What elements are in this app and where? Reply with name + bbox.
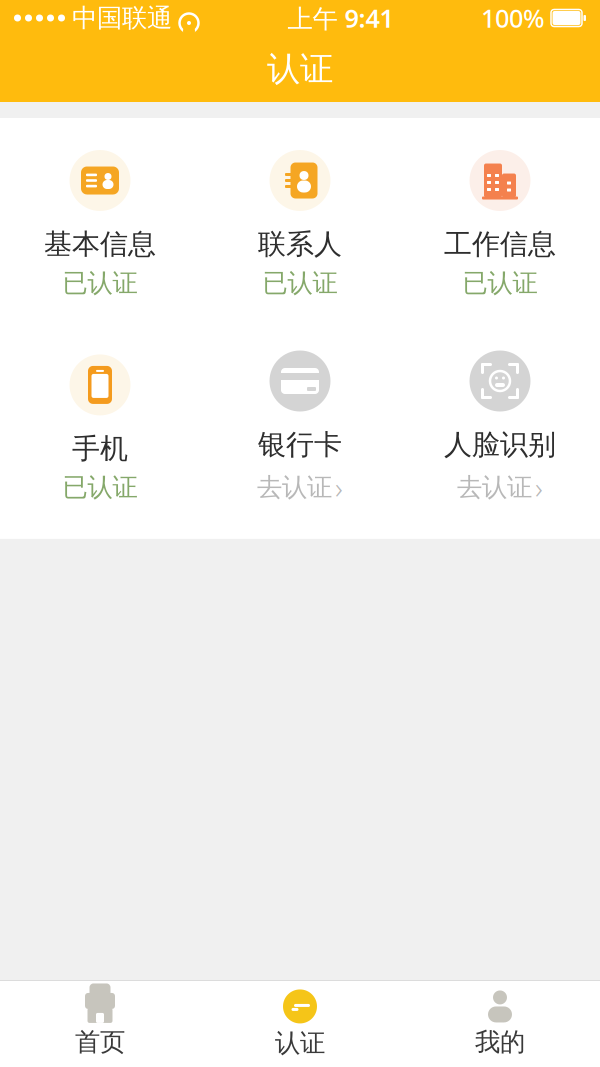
button[interactable]: 工作信息 <box>400 146 600 302</box>
staticText: 去认证 <box>257 472 332 503</box>
staticText: › <box>335 468 343 507</box>
staticText: 已认证 <box>462 267 537 298</box>
staticText: 工作信息 <box>444 227 556 261</box>
button[interactable]: 手机 <box>0 350 200 507</box>
staticText: 上午 9:41 <box>287 1 393 35</box>
staticText: 认证 <box>275 1027 325 1058</box>
button[interactable]: 人脸识别 <box>400 346 600 511</box>
button[interactable]: 认证 <box>0 36 600 102</box>
staticText: 中国联通 <box>72 2 172 33</box>
button[interactable]: 首页 <box>0 984 200 1063</box>
staticText: 我的 <box>475 1026 525 1057</box>
staticText: 去认证 <box>457 472 532 503</box>
button[interactable]: 联系人 <box>200 146 400 302</box>
button[interactable]: 银行卡 <box>200 346 400 511</box>
staticText: 已认证 <box>62 267 137 298</box>
staticText: 首页 <box>75 1026 125 1057</box>
staticText: 基本信息 <box>44 227 156 261</box>
button[interactable]: 我的 <box>400 984 600 1063</box>
staticText: 人脸识别 <box>444 427 556 462</box>
button[interactable]: 基本信息 <box>0 146 200 302</box>
staticText: 联系人 <box>258 227 342 261</box>
staticText: › <box>535 468 543 507</box>
staticText: 已认证 <box>262 267 337 298</box>
button[interactable]: 认证 <box>200 983 400 1064</box>
staticText: 已认证 <box>62 472 137 503</box>
staticText: 100% <box>481 1 545 35</box>
staticText: 认证 <box>267 48 333 89</box>
staticText: 银行卡 <box>258 427 342 462</box>
staticText: 手机 <box>72 431 128 466</box>
